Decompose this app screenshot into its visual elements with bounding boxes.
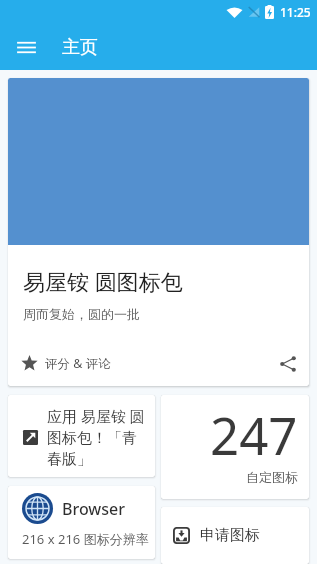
button[interactable]: Menu [10, 31, 42, 63]
staticText: 评分 & 评论 [45, 355, 111, 372]
button[interactable]: 应用 易屋铵 圆图标包！「青春版」 [8, 395, 155, 477]
staticText: 247 [210, 400, 298, 469]
button[interactable]: 申请图标 [161, 507, 309, 564]
staticText: 应用 易屋铵 圆图标包！「青春版」 [47, 406, 149, 468]
staticText: 216 x 216 图标分辨率 [22, 530, 149, 548]
button[interactable]: 评分 & 评论 [21, 355, 111, 372]
staticText: 周而复始，圆的一批 [23, 306, 140, 322]
button[interactable]: Browser [8, 486, 155, 559]
button[interactable]: 247 [161, 395, 309, 499]
staticText: 自定图标 [246, 469, 298, 485]
button[interactable]: Share [275, 351, 301, 377]
staticText: 主页 [62, 36, 98, 59]
staticText: 易屋铵 圆图标包 [23, 266, 183, 296]
staticText: Browser [62, 498, 126, 520]
staticText: 申请图标 [200, 526, 260, 545]
staticText: 11:25 [280, 4, 311, 20]
